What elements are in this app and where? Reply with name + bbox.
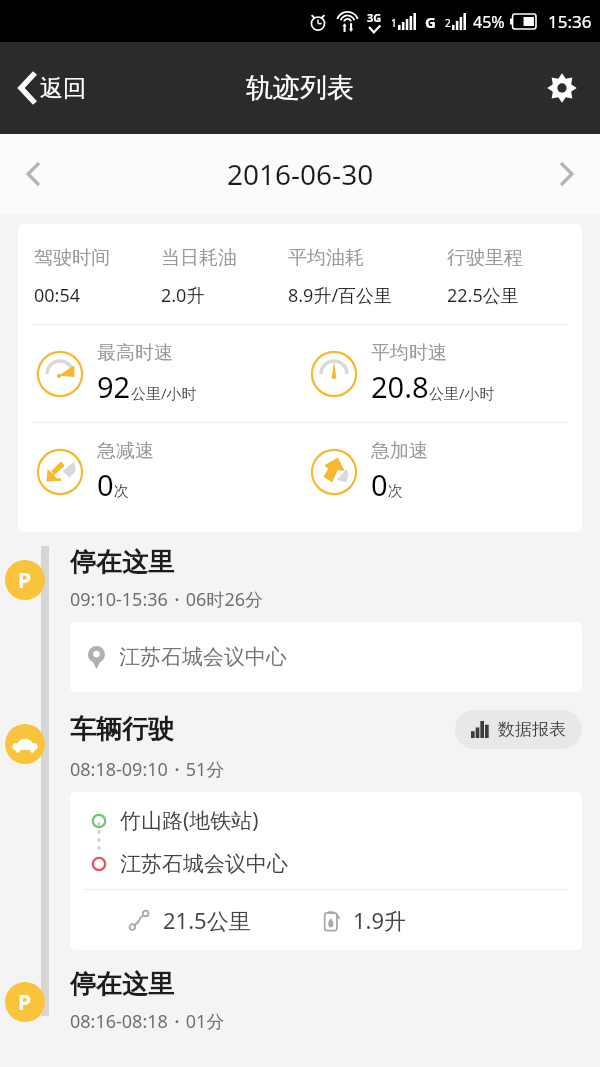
button[interactable]: Previous day bbox=[0, 143, 67, 205]
staticText: 1 bbox=[391, 16, 397, 30]
staticText: 20.8 bbox=[371, 367, 429, 406]
staticText: 0 bbox=[371, 465, 388, 504]
staticText: 2 bbox=[445, 16, 451, 30]
staticText: 00:54 bbox=[34, 283, 81, 308]
staticText: 22.5公里 bbox=[447, 283, 519, 308]
staticText: 竹山路(地铁站) bbox=[120, 806, 259, 835]
staticText: 2.0升 bbox=[161, 283, 205, 308]
staticText: P bbox=[18, 566, 32, 595]
staticText: G bbox=[425, 12, 436, 32]
staticText: 平均油耗 bbox=[288, 246, 364, 270]
staticText: 当日耗油 bbox=[161, 246, 237, 270]
staticText: 0 bbox=[97, 465, 114, 504]
staticText: 09:10-15:36・06时26分 bbox=[70, 587, 263, 612]
staticText: 08:18-09:10・51分 bbox=[70, 757, 225, 782]
staticText: 15:36 bbox=[548, 10, 592, 33]
staticText: 3G bbox=[367, 10, 382, 25]
staticText: 轨迹列表 bbox=[246, 71, 354, 105]
staticText: P bbox=[18, 988, 32, 1017]
staticText: 平均时速 bbox=[371, 341, 447, 365]
staticText: 45% bbox=[473, 11, 505, 33]
staticText: 92 bbox=[97, 367, 131, 406]
staticText: 08:16-08:18・01分 bbox=[70, 1009, 225, 1034]
button[interactable]: Settings bbox=[524, 54, 600, 122]
button[interactable]: 数据报表 bbox=[455, 710, 582, 749]
staticText: 急减速 bbox=[97, 439, 154, 463]
staticText: 次 bbox=[388, 482, 403, 501]
staticText: 江苏石城会议中心 bbox=[119, 644, 287, 670]
staticText: 急加速 bbox=[371, 439, 428, 463]
staticText: 行驶里程 bbox=[447, 246, 523, 270]
staticText: 车辆行驶 bbox=[70, 713, 174, 746]
button[interactable]: 返回 bbox=[0, 63, 102, 113]
button[interactable]: 江苏石城会议中心 bbox=[70, 622, 582, 692]
button[interactable]: 竹山路(地铁站) bbox=[70, 792, 582, 950]
staticText: 数据报表 bbox=[498, 719, 566, 740]
staticText: 返回 bbox=[40, 74, 86, 103]
staticText: 2016-06-30 bbox=[227, 155, 374, 193]
staticText: 公里/小时 bbox=[429, 383, 495, 403]
staticText: 1.9升 bbox=[353, 905, 407, 935]
button[interactable]: Next day bbox=[533, 143, 600, 205]
staticText: 8.9升/百公里 bbox=[288, 283, 393, 308]
staticText: 次 bbox=[114, 482, 129, 501]
staticText: 停在这里 bbox=[70, 546, 174, 579]
staticText: 停在这里 bbox=[70, 968, 174, 1001]
staticText: 驾驶时间 bbox=[34, 246, 110, 270]
staticText: 公里/小时 bbox=[131, 383, 197, 403]
staticText: 最高时速 bbox=[97, 341, 173, 365]
staticText: 江苏石城会议中心 bbox=[120, 851, 288, 877]
staticText: 21.5公里 bbox=[163, 905, 251, 935]
